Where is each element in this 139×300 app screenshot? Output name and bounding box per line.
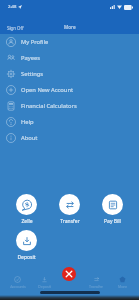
button[interactable]: About: [0, 130, 139, 146]
button[interactable]: Close menu: [62, 267, 76, 281]
staticText: Zelle: [21, 218, 33, 225]
button[interactable]: Transfer: [83, 274, 109, 291]
staticText: Financial Calculators: [21, 102, 77, 110]
button[interactable]: Pay Bill: [91, 194, 134, 225]
button[interactable]: Help: [0, 114, 139, 130]
staticText: About: [21, 134, 38, 142]
button[interactable]: Open New Account: [0, 82, 139, 98]
staticText: Settings: [21, 70, 44, 78]
button[interactable]: Accounts: [4, 274, 31, 291]
button[interactable]: My Profile: [0, 34, 139, 50]
button[interactable]: Deposit: [5, 230, 48, 261]
button[interactable]: Transfer: [48, 194, 91, 225]
button[interactable]: Settings: [0, 66, 139, 82]
button[interactable]: Zelle: [5, 194, 48, 225]
staticText: Deposit: [38, 284, 51, 289]
staticText: 2:48: [8, 4, 17, 10]
staticText: More: [118, 284, 127, 289]
button[interactable]: Sign Off: [0, 21, 31, 34]
staticText: Transfer: [60, 218, 80, 225]
staticText: Sign Off: [7, 25, 24, 31]
staticText: Open New Account: [21, 86, 74, 94]
staticText: Pay Bill: [104, 218, 121, 225]
staticText: Accounts: [10, 284, 26, 289]
staticText: More: [64, 24, 76, 30]
staticText: Payees: [21, 54, 41, 62]
staticText: Deposit: [17, 254, 36, 261]
button[interactable]: Financial Calculators: [0, 98, 139, 114]
staticText: Help: [21, 118, 34, 126]
staticText: My Profile: [21, 38, 49, 46]
button[interactable]: Deposit: [31, 274, 57, 291]
button[interactable]: Payees: [0, 50, 139, 66]
button[interactable]: More: [109, 274, 135, 291]
staticText: Transfer: [89, 284, 103, 289]
